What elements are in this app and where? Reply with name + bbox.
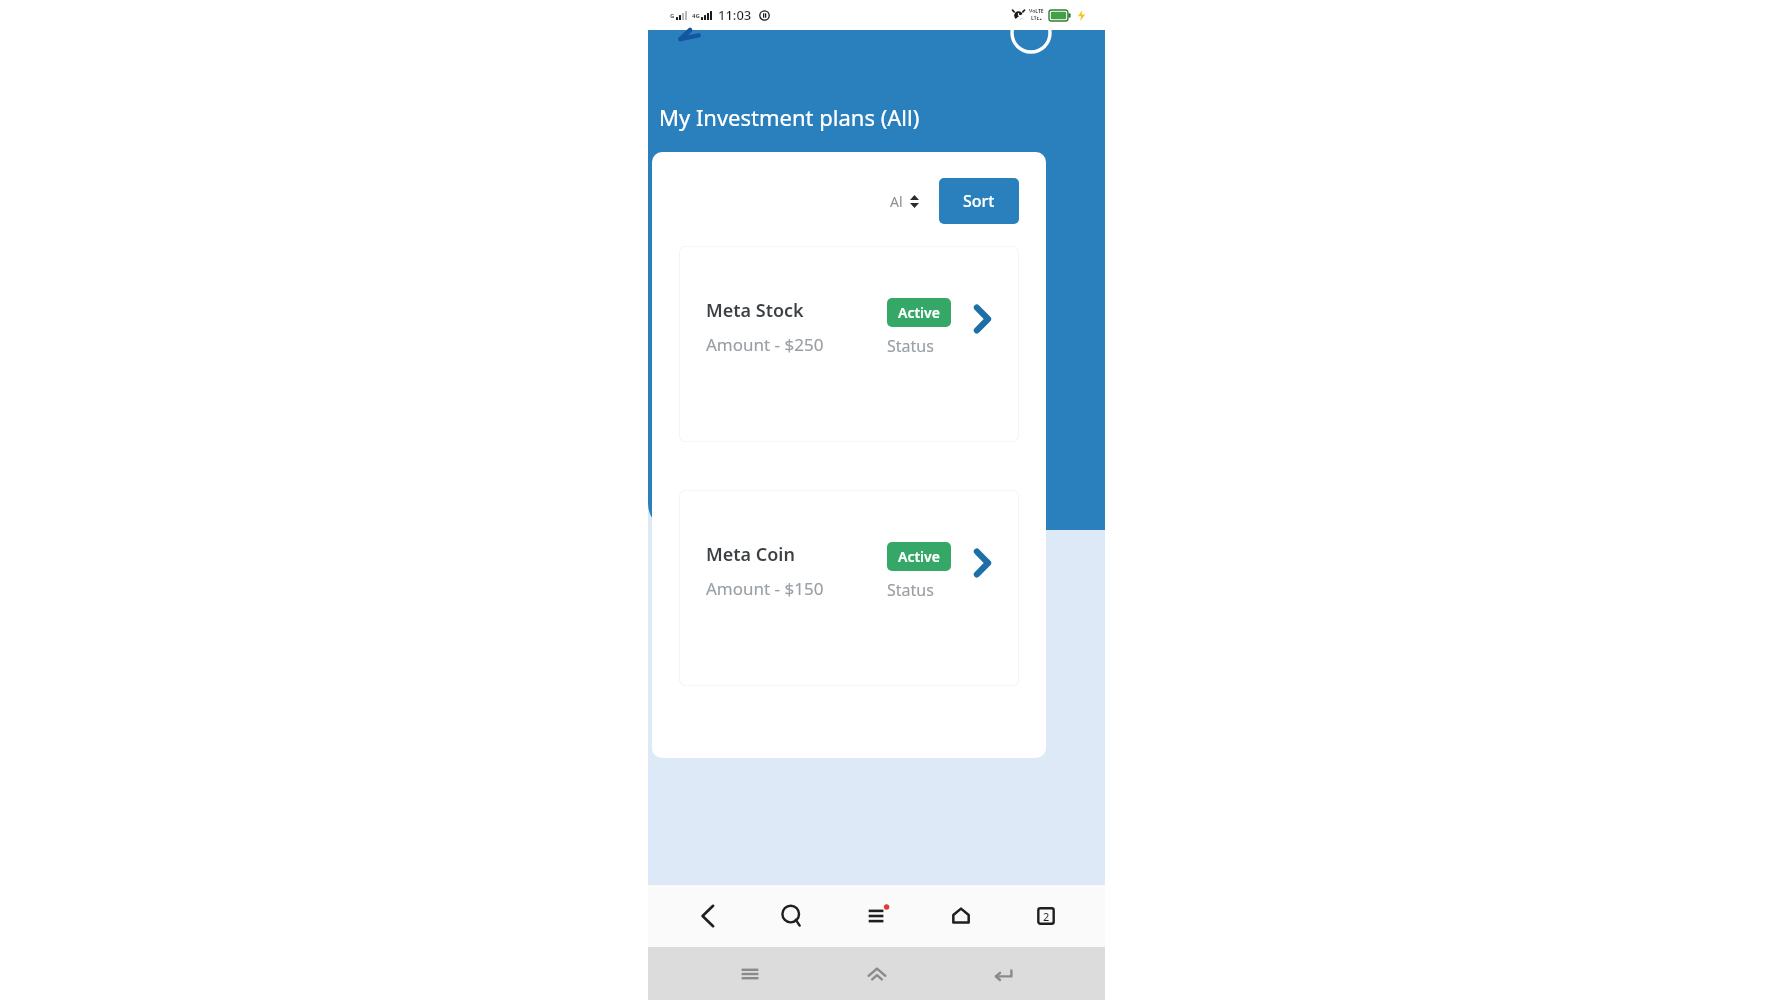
button[interactable]: Open plan details xyxy=(965,546,999,580)
staticText: Meta Coin xyxy=(706,542,795,567)
button[interactable]: Recents xyxy=(726,950,774,998)
staticText: Al xyxy=(890,192,903,211)
staticText: LTE2 xyxy=(1031,15,1043,22)
button[interactable]: Tabs, 2 open xyxy=(1021,891,1071,941)
button[interactable]: Open plan details xyxy=(965,302,999,336)
staticText: Amount - $250 xyxy=(706,333,824,356)
staticText: 4G xyxy=(692,12,700,20)
button[interactable]: Back xyxy=(683,891,733,941)
button[interactable]: Al xyxy=(869,180,939,222)
staticText: Active xyxy=(898,547,940,566)
button[interactable]: Meta Coin xyxy=(679,490,1019,686)
staticText: Status xyxy=(887,335,934,357)
button[interactable]: Back xyxy=(979,950,1027,998)
staticText: Status xyxy=(887,579,934,601)
staticText: G xyxy=(670,12,675,20)
button[interactable]: Home xyxy=(853,950,901,998)
button[interactable]: Sort xyxy=(939,178,1019,224)
staticText: Meta Stock xyxy=(706,298,804,323)
button[interactable]: Profile xyxy=(1010,12,1052,54)
staticText: 11:03 xyxy=(718,6,752,24)
staticText: Amount - $150 xyxy=(706,577,824,600)
staticText: 2 xyxy=(1043,909,1050,924)
other: Back xyxy=(674,30,700,39)
button[interactable]: Meta Stock xyxy=(679,246,1019,442)
button[interactable]: Search xyxy=(767,891,817,941)
staticText: Active xyxy=(898,303,940,322)
staticText: VoLTE xyxy=(1029,8,1044,15)
button[interactable]: Home xyxy=(936,891,986,941)
button[interactable]: Menu xyxy=(852,891,902,941)
staticText: My Investment plans (All) xyxy=(659,102,920,132)
staticText: Sort xyxy=(963,190,995,212)
